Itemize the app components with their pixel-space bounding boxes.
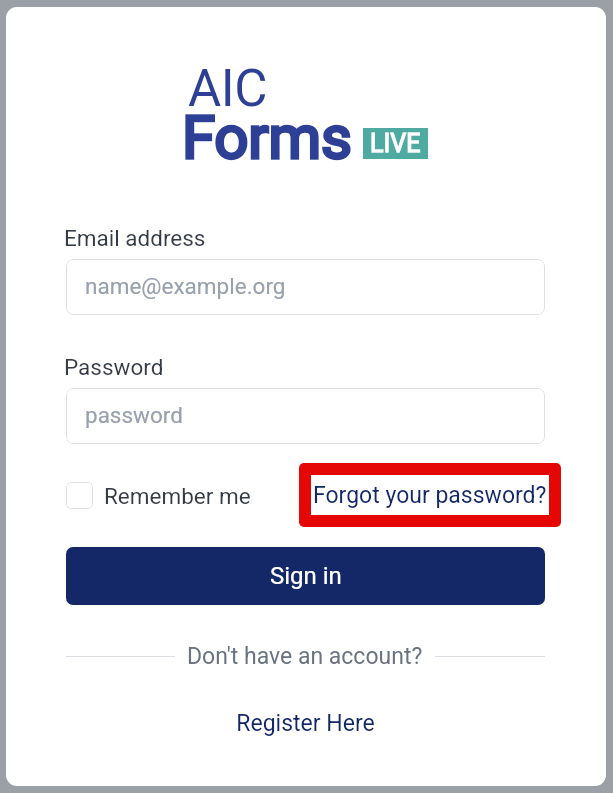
button[interactable]: name@example.org [66, 259, 545, 315]
staticText: Remember me [104, 483, 251, 509]
button[interactable]: Remember me [64, 480, 253, 511]
staticText: Forgot your password? [313, 482, 547, 509]
staticText: Email address [64, 225, 206, 251]
button[interactable]: Forgot your password? [299, 463, 561, 527]
button[interactable]: password [66, 388, 545, 444]
staticText: LIVE [370, 129, 421, 158]
staticText: Forms [182, 102, 352, 172]
button[interactable]: Register Here [234, 708, 377, 739]
staticText: Forms [182, 102, 352, 172]
staticText: Sign in [270, 562, 342, 590]
staticText: Don't have an account? [187, 643, 423, 670]
button[interactable]: Sign in [66, 547, 545, 605]
staticText: Password [64, 354, 164, 380]
staticText: password [85, 402, 183, 428]
staticText: AIC [188, 59, 267, 119]
staticText: name@example.org [85, 273, 286, 299]
